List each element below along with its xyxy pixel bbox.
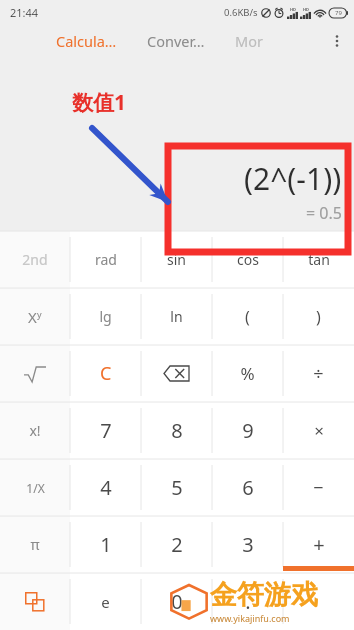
staticText: Calcula… [56, 31, 117, 51]
staticText: = [313, 588, 325, 615]
staticText: 79 [335, 9, 342, 17]
staticText: 2 [171, 531, 183, 558]
button[interactable]: 8 [141, 402, 212, 459]
staticText: 9 [242, 417, 254, 444]
staticText: 4 [100, 474, 112, 501]
staticText: y [37, 308, 42, 320]
button[interactable]: ln [141, 288, 212, 345]
staticText: (2^(-1)) [244, 158, 342, 199]
button[interactable]: 2 [141, 516, 212, 573]
button[interactable]: ) [283, 288, 354, 345]
staticText: sin [167, 250, 186, 269]
staticText: lg [99, 307, 112, 326]
button[interactable]: ÷ [283, 345, 354, 402]
staticText: cos [237, 250, 259, 269]
button[interactable]: Mor [235, 27, 263, 55]
staticText: 21:44 [10, 5, 39, 20]
staticText: = 0.5 [306, 202, 342, 224]
staticText: X [28, 307, 37, 327]
staticText: . [245, 588, 251, 615]
button[interactable]: 1 [70, 516, 141, 573]
button[interactable]: − [283, 459, 354, 516]
button[interactable]: 2nd [0, 231, 70, 288]
staticText: × [314, 419, 324, 442]
staticText: 金符游戏 [210, 578, 318, 612]
staticText: 2nd [22, 250, 48, 269]
staticText: 1 [100, 531, 112, 558]
button[interactable]: Backspace [141, 345, 212, 402]
button[interactable]: × [283, 402, 354, 459]
button[interactable]: rad [70, 231, 141, 288]
button[interactable]: 6 [212, 459, 283, 516]
staticText: e [101, 592, 110, 612]
staticText: 5 [171, 474, 183, 501]
button[interactable]: sin [141, 231, 212, 288]
staticText: C [100, 361, 112, 386]
button[interactable]: e [70, 573, 141, 630]
button[interactable]: x! [0, 402, 70, 459]
staticText: 1/X [26, 480, 45, 496]
button[interactable]: + [283, 516, 354, 573]
staticText: HD [290, 7, 296, 12]
button[interactable]: ( [212, 288, 283, 345]
button[interactable]: cos [212, 231, 283, 288]
staticText: + [313, 531, 325, 558]
staticText: HD [303, 7, 309, 12]
button[interactable]: 4 [70, 459, 141, 516]
staticText: 3 [242, 531, 254, 558]
staticText: 8 [171, 417, 183, 444]
button[interactable]: = [283, 573, 354, 630]
button[interactable]: 5 [141, 459, 212, 516]
staticText: Mor [235, 31, 263, 51]
staticText: ) [316, 306, 321, 328]
button[interactable]: 7 [70, 402, 141, 459]
button[interactable]: 9 [212, 402, 283, 459]
staticText: x! [29, 421, 41, 440]
button[interactable] [0, 345, 70, 402]
staticText: www.yikajinfu.com [210, 612, 290, 624]
button[interactable]: π [0, 516, 70, 573]
staticText: − [313, 475, 324, 500]
staticText: 数值1 [72, 88, 127, 117]
button[interactable]: . [212, 573, 283, 630]
button[interactable]: lg [70, 288, 141, 345]
staticText: Conver… [147, 31, 205, 51]
button[interactable]: 3 [212, 516, 283, 573]
button[interactable]: Unit converter [0, 573, 70, 630]
staticText: ln [170, 307, 183, 326]
button[interactable]: % [212, 345, 283, 402]
button[interactable]: 1/X [0, 459, 70, 516]
staticText: ( [245, 306, 250, 328]
staticText: 7 [100, 417, 112, 444]
staticText: 0.6KB/s [224, 6, 258, 19]
button[interactable]: Conver… [147, 27, 205, 55]
other: Unit converter [24, 591, 46, 613]
button[interactable]: tan [283, 231, 354, 288]
button[interactable]: C [70, 345, 141, 402]
staticText: rad [95, 250, 117, 269]
staticText: 0 [171, 588, 183, 615]
staticText: π [30, 535, 40, 554]
button[interactable]: Calcula… [56, 27, 117, 55]
staticText: 6 [242, 474, 254, 501]
button[interactable]: More options [324, 28, 350, 54]
staticText: ÷ [313, 361, 324, 386]
staticText: % [240, 362, 255, 385]
staticText: tan [308, 250, 330, 269]
other: Backspace [163, 365, 190, 382]
button[interactable]: X [0, 288, 70, 345]
button[interactable]: 0 [141, 573, 212, 630]
